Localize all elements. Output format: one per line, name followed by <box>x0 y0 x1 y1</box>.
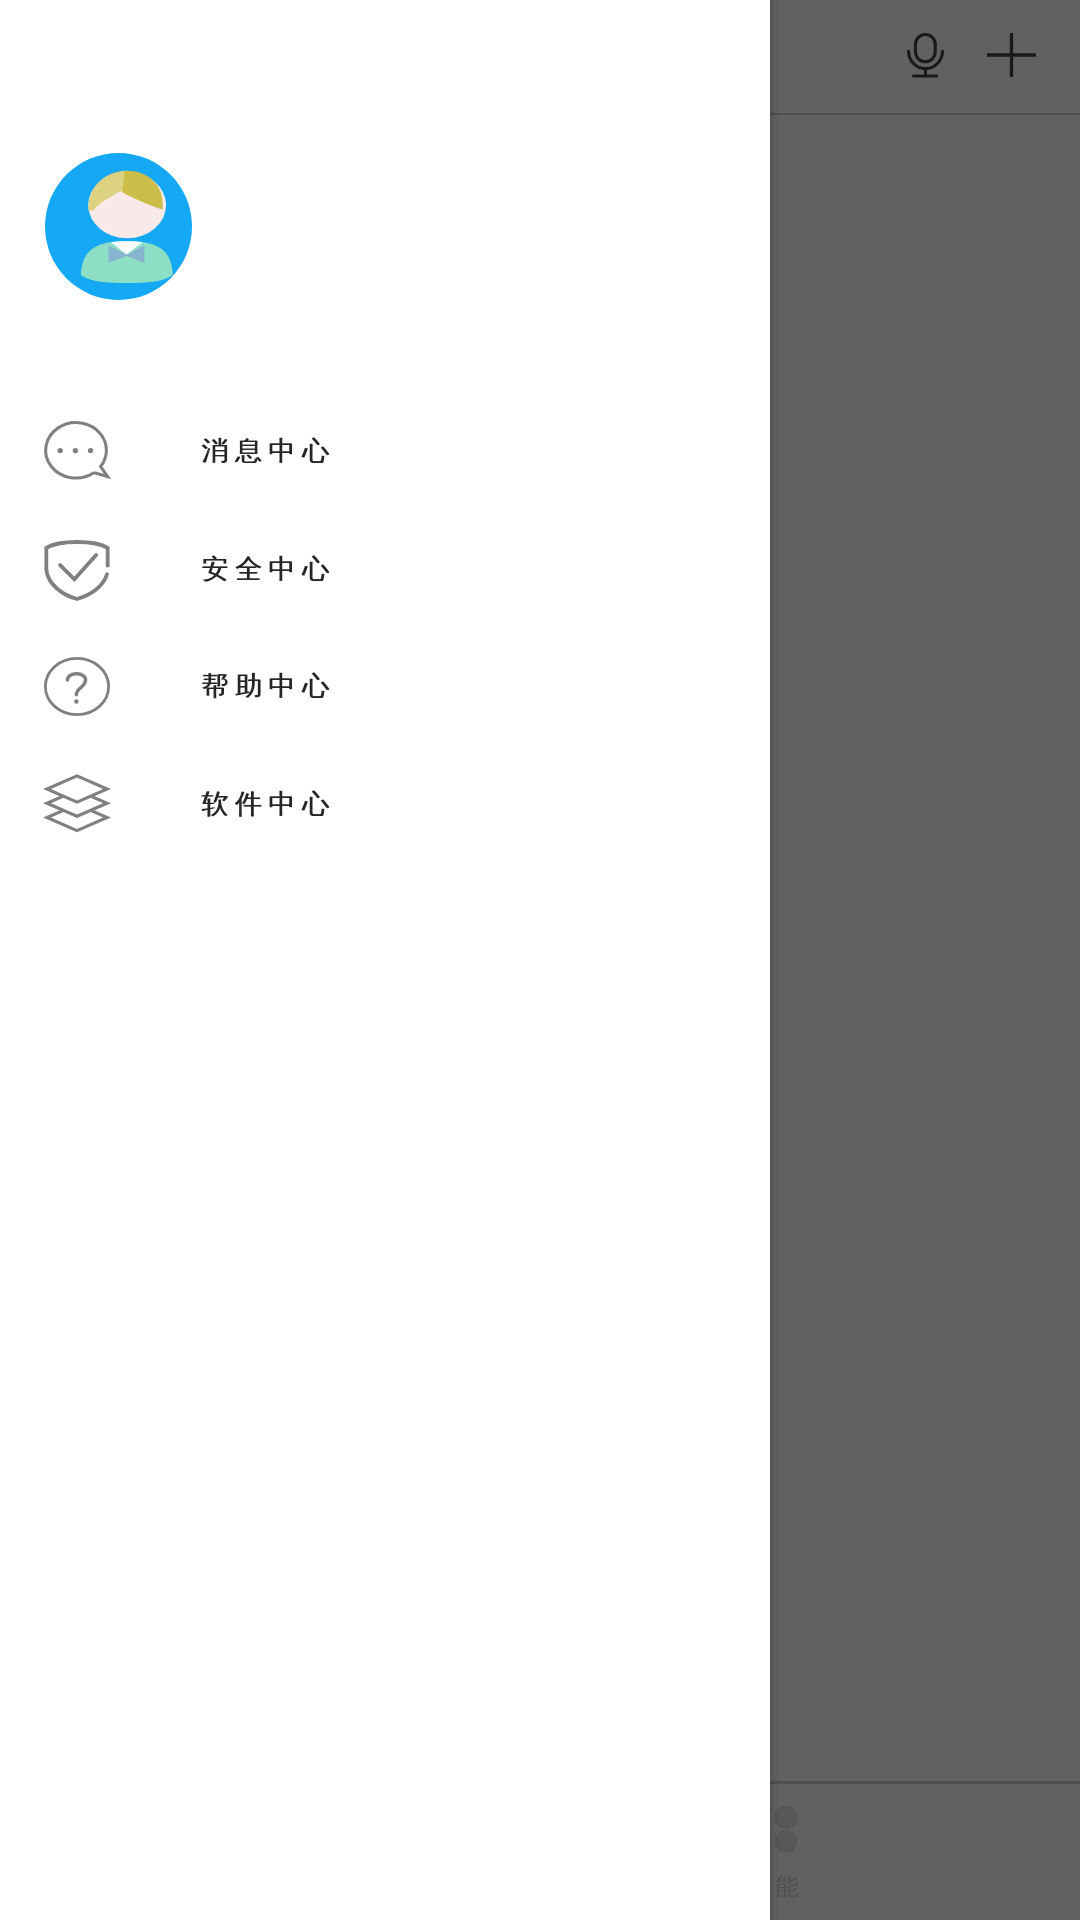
button[interactable]: Security centre <box>0 521 770 617</box>
staticText: 能 <box>776 1872 799 1901</box>
staticText: 能 <box>775 1872 798 1901</box>
button[interactable]: Voice search <box>877 7 973 103</box>
staticText: 消息中心 <box>198 434 332 468</box>
staticText: 安全中心 <box>199 552 333 586</box>
staticText: 软件中心 <box>198 787 332 821</box>
staticText: 帮助中心 <box>199 669 333 703</box>
button[interactable]: Profile <box>45 153 192 300</box>
button[interactable]: Help centre <box>0 638 770 734</box>
staticText: 软件中心 <box>199 787 333 821</box>
button[interactable]: Add <box>963 7 1059 103</box>
staticText: 帮助中心 <box>198 669 332 703</box>
button[interactable]: Smart <box>730 1784 842 1920</box>
button[interactable]: Software centre <box>0 756 770 852</box>
staticText: 消息中心 <box>199 434 333 468</box>
button[interactable]: Message centre <box>0 403 770 499</box>
staticText: 安全中心 <box>198 552 332 586</box>
